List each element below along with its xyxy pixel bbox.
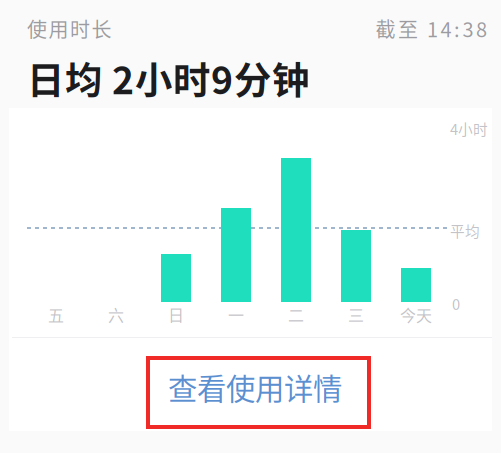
staticText: 今天 — [400, 303, 432, 326]
staticText: 六 — [108, 303, 124, 326]
staticText: 一 — [228, 303, 244, 326]
staticText: 日 — [168, 303, 184, 326]
staticText: 4小时 — [450, 118, 488, 139]
staticText: 查看使用详情 — [168, 366, 342, 408]
staticText: 使用时长 — [27, 14, 111, 43]
staticText: 截至 14:38 — [375, 14, 487, 43]
staticText: 二 — [288, 303, 304, 326]
button[interactable]: 查看使用详情 — [9, 343, 501, 431]
staticText: 平均 — [450, 220, 480, 241]
staticText: 0 — [452, 293, 460, 314]
staticText: 日均 2小时9分钟 — [27, 51, 309, 105]
staticText: 五 — [48, 303, 64, 326]
staticText: 三 — [348, 303, 364, 326]
